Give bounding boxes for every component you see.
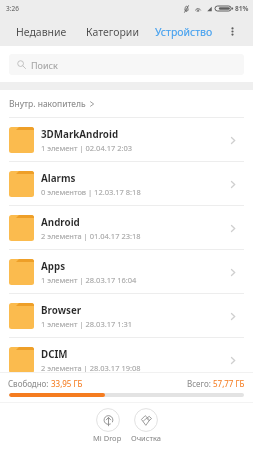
staticText: Очистка	[131, 433, 161, 443]
button[interactable]: Browser	[0, 294, 253, 338]
staticText: 33,95 ГБ	[51, 378, 83, 389]
staticText: 1 элемент | 28.03.17 1:31	[41, 319, 133, 329]
button[interactable]: Android	[0, 206, 253, 250]
staticText: 2 элемента | 01.04.17 23:18	[41, 231, 141, 241]
staticText: Apps	[41, 260, 66, 273]
staticText: Внутр. накопитель	[9, 98, 86, 110]
staticText: Свободно:	[8, 378, 51, 389]
button[interactable]: DCIM	[0, 338, 253, 382]
staticText: Browser	[41, 304, 82, 317]
staticText: 3:26	[6, 4, 19, 13]
staticText: 57,77 ГБ	[213, 378, 245, 389]
staticText: 81%	[235, 4, 249, 13]
button[interactable]: Категории	[77, 17, 148, 46]
staticText: Android	[41, 216, 80, 229]
button[interactable]: Устройство	[148, 17, 219, 46]
staticText: DCIM	[41, 348, 68, 361]
staticText: Всего:	[187, 378, 213, 389]
staticText: 3DMarkAndroid	[41, 128, 119, 141]
staticText: Недавние	[16, 25, 67, 39]
button[interactable]: Apps	[0, 250, 253, 294]
button[interactable]: Поиск	[9, 54, 244, 75]
staticText: 1 элемент | 28.03.17 16:04	[41, 275, 137, 285]
button[interactable]: Недавние	[6, 17, 77, 46]
staticText: 1 элемент | 02.04.17 2:03	[41, 143, 133, 153]
staticText: Устройство	[155, 25, 213, 39]
staticText: 2 элемента | 28.03.17 19:08	[41, 363, 141, 373]
button[interactable]: Внутр. накопитель	[9, 98, 95, 110]
staticText: Поиск	[31, 59, 58, 71]
staticText: 0 элементов | 12.03.17 8:18	[41, 187, 141, 197]
button[interactable]: Очистка	[131, 408, 161, 443]
button[interactable]: 3DMarkAndroid	[0, 118, 253, 162]
button[interactable]: More options	[219, 17, 253, 46]
staticText: Категории	[86, 25, 139, 39]
staticText: Mi Drop	[93, 433, 122, 443]
button[interactable]: Alarms	[0, 162, 253, 206]
button[interactable]: Mi Drop	[93, 408, 122, 443]
staticText: Alarms	[41, 172, 76, 185]
